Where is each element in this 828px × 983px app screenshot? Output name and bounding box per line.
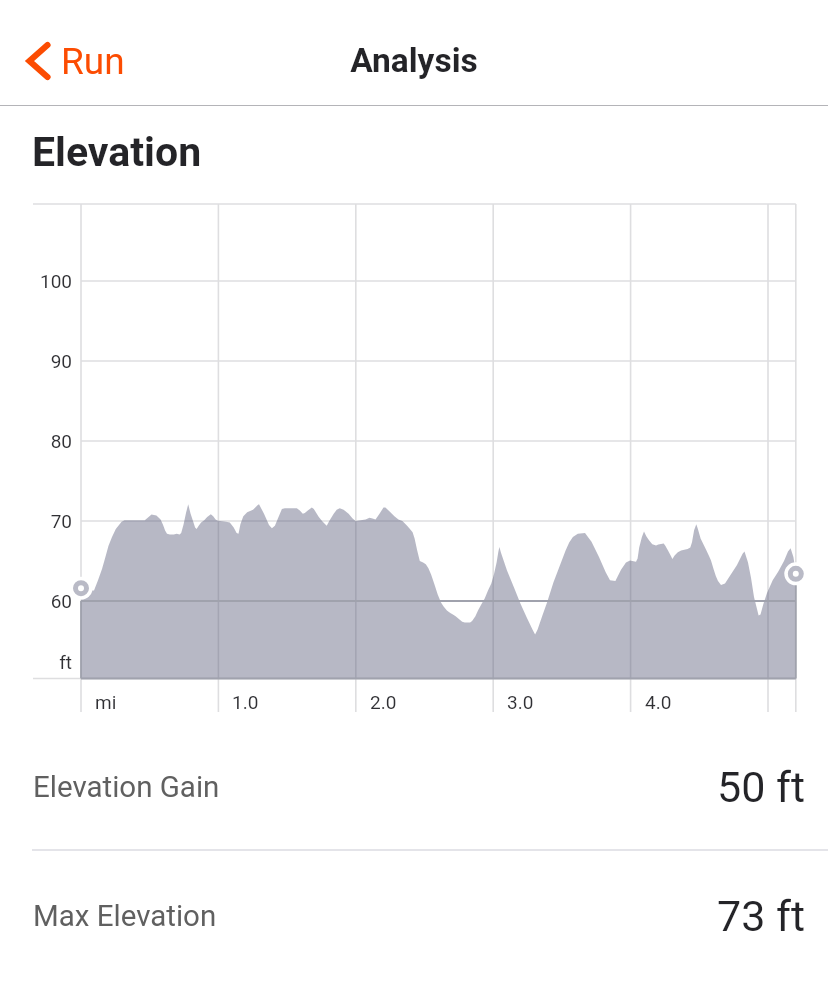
staticText: 3.0 [507, 691, 534, 713]
staticText: Elevation [32, 128, 202, 176]
staticText: 80 [0, 430, 72, 452]
staticText: 100 [0, 270, 72, 292]
staticText: ft [0, 651, 72, 673]
staticText: 73 ft [717, 891, 806, 941]
staticText: Max Elevation [33, 899, 217, 934]
staticText: 1.0 [232, 691, 259, 713]
staticText: 60 [0, 590, 72, 612]
staticText: mi [95, 691, 117, 713]
button[interactable]: Elevation Gain [0, 732, 828, 842]
other: Back [25, 38, 51, 84]
staticText: 70 [0, 510, 72, 532]
staticText: Run [61, 40, 125, 83]
staticText: 2.0 [370, 691, 397, 713]
staticText: Elevation Gain [33, 770, 220, 805]
staticText: Analysis [0, 41, 828, 80]
button[interactable]: Max Elevation [0, 861, 828, 971]
button[interactable]: Back [17, 32, 133, 90]
staticText: 90 [0, 350, 72, 372]
staticText: 4.0 [645, 691, 672, 713]
staticText: 50 ft [717, 762, 806, 812]
